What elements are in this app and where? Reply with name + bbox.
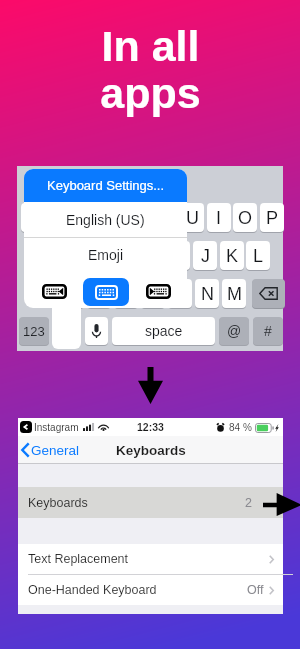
- staticText: F: [120, 246, 131, 266]
- button[interactable]: C: [114, 279, 138, 308]
- button[interactable]: Current keyboard: [83, 278, 129, 306]
- staticText: V: [147, 284, 160, 304]
- other: Right arrow: [263, 493, 300, 516]
- button[interactable]: D: [87, 241, 111, 270]
- staticText: N: [201, 284, 214, 304]
- staticText: C: [120, 284, 133, 304]
- staticText: 2: [245, 496, 252, 510]
- staticText: English (US): [66, 212, 145, 228]
- button[interactable]: B: [168, 279, 192, 308]
- button[interactable]: O: [233, 203, 257, 232]
- button[interactable]: H: [166, 241, 190, 270]
- button[interactable]: I: [207, 203, 231, 232]
- staticText: One-Handed Keyboard: [28, 583, 157, 597]
- button[interactable]: Z: [60, 279, 84, 308]
- staticText: L: [253, 246, 264, 266]
- staticText: @: [227, 323, 242, 339]
- staticText: T: [134, 208, 145, 228]
- staticText: Keyboards: [116, 443, 186, 458]
- button[interactable]: Emoji: [24, 238, 187, 271]
- button[interactable]: P: [260, 203, 284, 232]
- staticText: K: [226, 246, 239, 266]
- staticText: I: [216, 208, 222, 228]
- button[interactable]: V: [141, 279, 165, 308]
- button[interactable]: Next keyboard: [140, 275, 177, 307]
- button[interactable]: General: [21, 442, 80, 458]
- staticText: Off: [247, 583, 264, 597]
- staticText: #: [264, 323, 272, 339]
- button[interactable]: K: [220, 241, 244, 270]
- staticText: D: [93, 246, 106, 266]
- staticText: O: [238, 208, 253, 228]
- button[interactable]: One-Handed Keyboard: [28, 575, 274, 605]
- button[interactable]: U: [180, 203, 204, 232]
- button[interactable]: W: [47, 203, 71, 232]
- staticText: Text Replacement: [28, 552, 129, 566]
- button[interactable]: Backspace: [252, 279, 285, 308]
- staticText: Keyboard Settings...: [47, 178, 165, 193]
- staticText: Instagram: [34, 422, 79, 433]
- button[interactable]: F: [113, 241, 137, 270]
- button[interactable]: Q: [21, 203, 45, 232]
- button[interactable]: English (US): [24, 202, 187, 237]
- button[interactable]: R: [100, 203, 124, 232]
- staticText: General: [31, 443, 80, 458]
- staticText: 12:33: [137, 421, 164, 433]
- staticText: 84 %: [229, 422, 252, 433]
- button[interactable]: Dictate: [85, 317, 108, 345]
- staticText: Keyboards: [28, 496, 88, 510]
- staticText: U: [186, 208, 199, 228]
- other: Down arrow: [138, 367, 163, 404]
- staticText: J: [201, 246, 210, 266]
- staticText: P: [266, 208, 279, 228]
- button[interactable]: Text Replacement: [28, 544, 274, 574]
- button[interactable]: @: [219, 317, 249, 345]
- button[interactable]: #: [253, 317, 283, 345]
- button[interactable]: space: [112, 317, 215, 345]
- button[interactable]: E: [74, 203, 98, 232]
- button[interactable]: T: [127, 203, 151, 232]
- button[interactable]: L: [246, 241, 270, 270]
- button[interactable]: 123: [19, 317, 49, 345]
- staticText: E: [80, 208, 93, 228]
- button[interactable]: Back to Instagram: [20, 421, 32, 433]
- button[interactable]: Previous keyboard: [36, 275, 73, 307]
- staticText: space: [145, 323, 183, 339]
- button[interactable]: M: [222, 279, 246, 308]
- staticText: R: [106, 208, 119, 228]
- button[interactable]: Keyboards: [28, 487, 274, 518]
- button[interactable]: X: [87, 279, 111, 308]
- staticText: 123: [23, 324, 45, 339]
- staticText: W: [51, 208, 68, 228]
- staticText: X: [93, 284, 106, 304]
- button[interactable]: J: [193, 241, 217, 270]
- button[interactable]: Shift: [33, 279, 57, 308]
- staticText: Emoji: [88, 247, 124, 263]
- button[interactable]: N: [195, 279, 219, 308]
- staticText: M: [227, 284, 242, 304]
- staticText: In all apps: [100, 22, 201, 118]
- button[interactable]: Keyboard Settings...: [24, 169, 187, 202]
